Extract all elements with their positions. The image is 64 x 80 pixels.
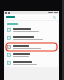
button[interactable] xyxy=(5,26,58,34)
button[interactable] xyxy=(5,51,58,59)
button[interactable]: Search xyxy=(52,15,57,20)
button[interactable] xyxy=(5,59,58,67)
button[interactable] xyxy=(5,34,58,42)
button[interactable] xyxy=(5,43,58,51)
